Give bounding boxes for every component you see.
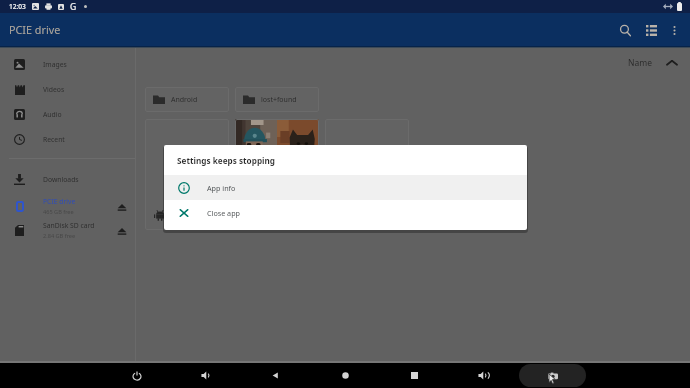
button[interactable]: Name [622,53,684,73]
staticText: Name [628,57,652,69]
staticText: Android [171,95,198,105]
staticText: Videos [43,85,65,94]
button[interactable]: Recent [0,127,136,152]
button[interactable]: Eject SanDisk SD card [114,223,130,239]
button[interactable]: Audio [0,102,136,127]
staticText: Close app [207,208,240,218]
button[interactable]: Eject PCIE drive [114,199,130,215]
button[interactable]: App info [164,175,527,200]
button[interactable] [145,119,229,230]
button[interactable]: Downloads [0,167,136,192]
button[interactable]: Screenshot [519,364,586,387]
staticText: Downloads [43,175,79,184]
staticText: App info [207,183,236,193]
button[interactable]: Videos [0,77,136,102]
button[interactable]: Volume up [472,363,494,388]
button[interactable]: Volume down [195,363,217,388]
button[interactable]: Recent apps [403,363,425,388]
staticText: Recent [43,135,65,144]
staticText: Images [43,60,67,69]
button[interactable] [325,119,409,230]
staticText: 12:03 [9,2,26,11]
staticText: 2.84 GB free [43,232,76,240]
button[interactable]: Back [264,363,286,388]
staticText: SanDisk SD card [43,221,95,230]
staticText: Settings keeps stopping [177,155,276,166]
button[interactable]: Images [0,52,136,77]
staticText: G [70,1,77,13]
staticText: lost+found [261,95,297,105]
button[interactable]: Power [126,363,148,388]
button[interactable]: More options [662,18,686,42]
button[interactable]: Home [334,363,356,388]
staticText: PCIE drive [43,197,76,206]
staticText: 465 GB free [43,208,74,216]
button[interactable]: Android [145,87,229,112]
button[interactable]: lost+found [235,87,319,112]
button[interactable]: Close app [164,200,527,225]
button[interactable] [235,119,319,230]
staticText: PCIE drive [9,22,61,37]
button[interactable]: PCIE drive [0,194,136,219]
button[interactable]: Search [613,18,637,42]
staticText: Audio [43,110,62,119]
button[interactable]: SanDisk SD card [0,218,136,243]
button[interactable]: Grid view [639,18,663,42]
